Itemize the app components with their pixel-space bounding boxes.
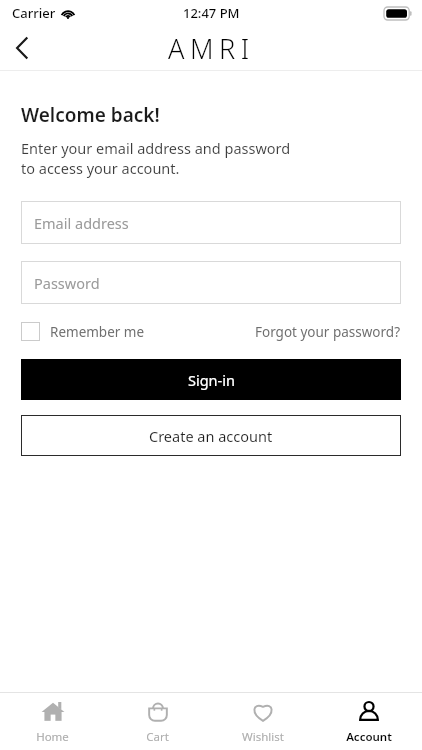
button[interactable]: Wishlist: [210, 693, 316, 750]
staticText: Enter your email address and password to…: [21, 138, 291, 179]
button[interactable]: Back: [0, 26, 44, 70]
button[interactable]: Cart: [105, 693, 210, 750]
staticText: Welcome back!: [21, 102, 160, 128]
button[interactable]: Account: [316, 693, 422, 750]
staticText: Remember me: [50, 323, 145, 341]
staticText: Sign-in: [188, 370, 235, 390]
staticText: Home: [36, 729, 69, 745]
button[interactable]: Remember me: [21, 322, 145, 341]
staticText: Create an account: [149, 426, 273, 446]
staticText: Wishlist: [242, 729, 284, 745]
button[interactable]: Home: [0, 693, 105, 750]
button[interactable]: Forgot your password?: [255, 323, 401, 341]
staticText: Forgot your password?: [255, 323, 401, 341]
staticText: Email address: [34, 213, 129, 233]
staticText: AMRI: [168, 30, 255, 67]
staticText: Carrier: [12, 4, 56, 22]
button[interactable]: Sign-in: [21, 359, 401, 400]
button[interactable]: Email address: [21, 201, 401, 244]
staticText: Account: [346, 729, 392, 745]
button[interactable]: Password: [21, 261, 401, 304]
staticText: Password: [34, 273, 100, 293]
staticText: 12:47 PM: [183, 4, 240, 22]
button[interactable]: Create an account: [21, 415, 401, 456]
staticText: Cart: [146, 729, 169, 745]
